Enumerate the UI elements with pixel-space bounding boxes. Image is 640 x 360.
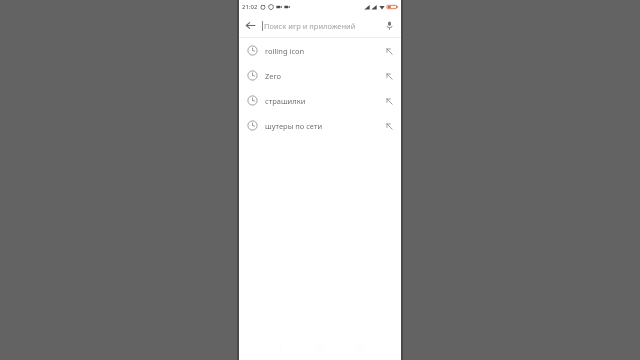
button[interactable]: Insert suggestion <box>377 114 401 138</box>
staticText: страшилки <box>265 96 377 106</box>
button[interactable]: Voice search <box>378 14 401 37</box>
staticText: Zero <box>265 71 377 81</box>
button[interactable]: страшилки <box>239 88 401 113</box>
staticText: шутеры по сети <box>265 121 377 131</box>
staticText: Поиск игр и приложений <box>264 21 356 31</box>
staticText: 21:02 <box>242 3 258 11</box>
button[interactable]: Insert suggestion <box>377 89 401 113</box>
button[interactable]: шутеры по сети <box>239 113 401 138</box>
button[interactable]: Zero <box>239 63 401 88</box>
button[interactable]: Insert suggestion <box>377 39 401 63</box>
staticText: rolling icon <box>265 46 377 56</box>
button[interactable]: Back <box>239 14 262 37</box>
button[interactable]: Insert suggestion <box>377 64 401 88</box>
button[interactable]: Поиск игр и приложений <box>262 14 378 37</box>
button[interactable]: rolling icon <box>239 38 401 63</box>
